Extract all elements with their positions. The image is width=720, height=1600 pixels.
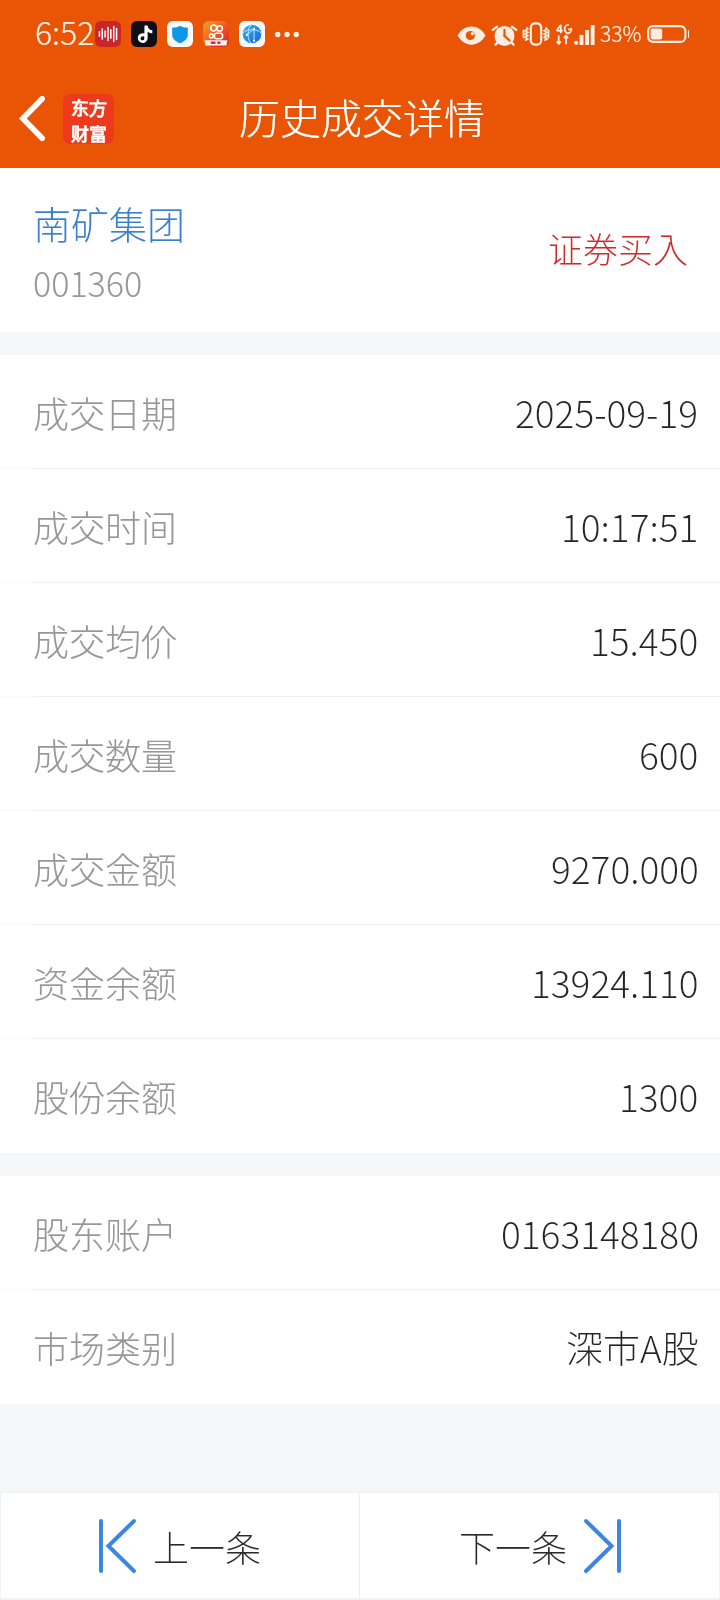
staticText: 股份余额: [33, 1070, 178, 1122]
staticText: 历史成交详情: [239, 86, 485, 145]
staticText: 600: [639, 727, 699, 781]
staticText: 6:52: [35, 8, 95, 54]
staticText: 深市A股: [566, 1320, 699, 1374]
button[interactable]: 股份余额: [0, 1039, 720, 1153]
staticText: 9270.000: [551, 841, 699, 895]
staticText: 成交金额: [33, 842, 178, 894]
button[interactable]: 成交金额: [0, 811, 720, 925]
staticText: 10:17:51: [561, 499, 699, 553]
staticText: 下一条: [459, 1520, 568, 1572]
staticText: 13924.110: [531, 955, 699, 1009]
button[interactable]: 市场类别: [0, 1290, 720, 1404]
staticText: 资金余额: [33, 956, 178, 1008]
staticText: 成交日期: [33, 386, 178, 438]
staticText: 001360: [33, 258, 143, 307]
button[interactable]: 资金余额: [0, 925, 720, 1039]
button[interactable]: 上一条: [1, 1493, 359, 1598]
staticText: 上一条: [153, 1520, 262, 1572]
staticText: 成交均价: [33, 614, 178, 666]
button[interactable]: 股东账户: [0, 1176, 720, 1290]
staticText: 股东账户: [33, 1207, 178, 1259]
staticText: 0163148180: [501, 1206, 699, 1260]
staticText: 东方: [71, 94, 107, 120]
button[interactable]: 成交数量: [0, 697, 720, 811]
button[interactable]: 下一条: [360, 1493, 719, 1598]
button[interactable]: 东方财富 Home: [63, 94, 114, 144]
button[interactable]: 成交均价: [0, 583, 720, 697]
staticText: 市场类别: [33, 1321, 178, 1373]
staticText: 2025-09-19: [515, 385, 699, 439]
staticText: 1300: [619, 1069, 699, 1123]
staticText: 财富: [71, 120, 107, 144]
staticText: 南矿集团: [33, 195, 186, 250]
staticText: 33%: [600, 18, 642, 48]
staticText: 成交时间: [33, 500, 178, 552]
button[interactable]: Back: [0, 84, 53, 153]
staticText: 证券买入: [548, 222, 689, 273]
staticText: 成交数量: [33, 728, 178, 780]
staticText: 15.450: [590, 613, 699, 667]
button[interactable]: 成交时间: [0, 469, 720, 583]
button[interactable]: 成交日期: [0, 355, 720, 469]
